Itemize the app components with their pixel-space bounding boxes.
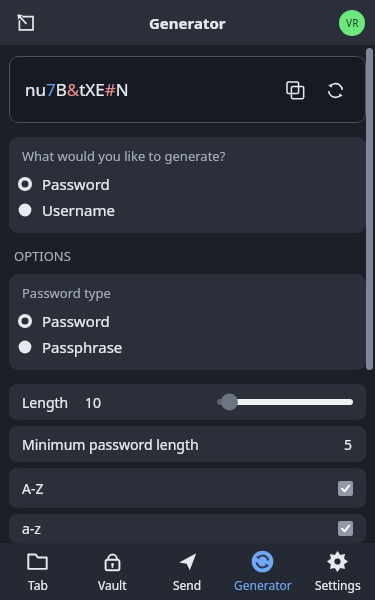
button[interactable]: Vault: [75, 544, 150, 599]
button[interactable]: Regenerate password: [318, 73, 352, 107]
staticText: nu7B&tXE#N: [25, 78, 129, 101]
staticText: Username: [42, 200, 115, 220]
staticText: Generator: [149, 13, 226, 33]
staticText: Passphrase: [42, 337, 123, 357]
button[interactable]: Passphrase: [9, 334, 366, 360]
button[interactable]: Tab: [0, 544, 75, 599]
button[interactable]: Username: [9, 197, 366, 223]
staticText: Length: [22, 393, 69, 412]
button[interactable]: Send: [150, 544, 225, 599]
button[interactable]: A-Z: [9, 468, 366, 508]
staticText: Settings: [315, 577, 361, 593]
staticText: Password: [42, 174, 110, 194]
button[interactable]: Generator: [225, 544, 300, 599]
button[interactable]: Minimum password length: [9, 426, 366, 462]
staticText: Tab: [28, 577, 48, 593]
staticText: 10: [85, 393, 102, 412]
staticText: What would you like to generate?: [22, 147, 226, 165]
button[interactable]: Settings: [300, 544, 375, 599]
button[interactable]: Expand: [10, 7, 42, 39]
button[interactable]: Copy: [278, 73, 312, 107]
staticText: A-Z: [22, 479, 44, 498]
staticText: Minimum password length: [22, 435, 199, 454]
button[interactable]: Password: [9, 171, 366, 197]
staticText: Vault: [98, 577, 127, 593]
staticText: 5: [344, 435, 353, 454]
staticText: Generator: [234, 577, 292, 593]
staticText: Password type: [22, 284, 111, 302]
staticText: OPTIONS: [14, 247, 71, 265]
staticText: a-z: [22, 519, 41, 538]
staticText: Send: [173, 577, 202, 593]
button[interactable]: Password: [9, 308, 366, 334]
staticText: VR: [346, 16, 359, 30]
button[interactable]: a-z: [9, 514, 366, 543]
button[interactable]: Account: [339, 10, 365, 36]
staticText: Password: [42, 311, 110, 331]
button[interactable]: Length: [9, 384, 366, 420]
